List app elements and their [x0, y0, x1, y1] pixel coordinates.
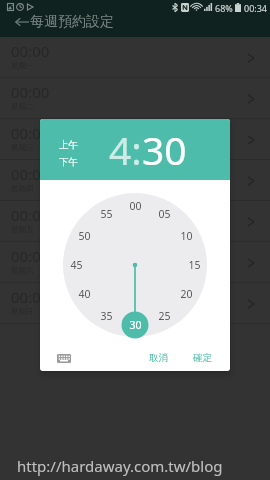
staticText: 15 — [188, 258, 201, 272]
staticText: 00:00 — [11, 82, 50, 102]
staticText: 10 — [180, 229, 193, 243]
staticText: 35 — [100, 309, 113, 323]
staticText: 下午 — [59, 156, 78, 168]
staticText: 00:34 — [244, 2, 268, 14]
staticText: 40 — [78, 287, 91, 301]
staticText: 30 — [142, 123, 187, 176]
staticText: 00:00 — [11, 246, 50, 266]
staticText: 每週預約設定 — [30, 13, 114, 31]
button[interactable]: 00:00 — [0, 119, 270, 160]
staticText: 30 — [129, 318, 142, 332]
staticText: 00:00 — [11, 164, 50, 184]
staticText: 20 — [180, 287, 193, 301]
button[interactable]: 確定 — [189, 349, 215, 367]
button[interactable]: Switch to keyboard input — [54, 348, 74, 368]
staticText: 00:00 — [11, 123, 50, 143]
button[interactable]: Back — [9, 10, 35, 33]
staticText: 00:00 — [11, 41, 50, 61]
button[interactable]: 00:00 — [0, 160, 270, 201]
staticText: 68% — [215, 2, 233, 14]
staticText: 4: — [109, 123, 142, 176]
button[interactable]: 00:00 — [0, 283, 270, 324]
staticText: 25 — [158, 309, 171, 323]
staticText: 取消 — [149, 352, 168, 364]
staticText: 45 — [70, 258, 83, 272]
staticText: http://hardaway.com.tw/blog — [17, 456, 223, 476]
staticText: 00:00 — [11, 287, 50, 307]
staticText: 確定 — [193, 352, 212, 364]
button[interactable]: 取消 — [145, 349, 171, 367]
staticText: 上午 — [59, 139, 78, 151]
staticText: 55 — [100, 207, 113, 221]
button[interactable]: 00:00 — [0, 201, 270, 242]
staticText: 00 — [129, 199, 142, 213]
staticText: 50 — [78, 229, 91, 243]
staticText: 05 — [158, 207, 171, 221]
staticText: 00:00 — [11, 205, 50, 225]
button[interactable]: 00:00 — [0, 242, 270, 283]
